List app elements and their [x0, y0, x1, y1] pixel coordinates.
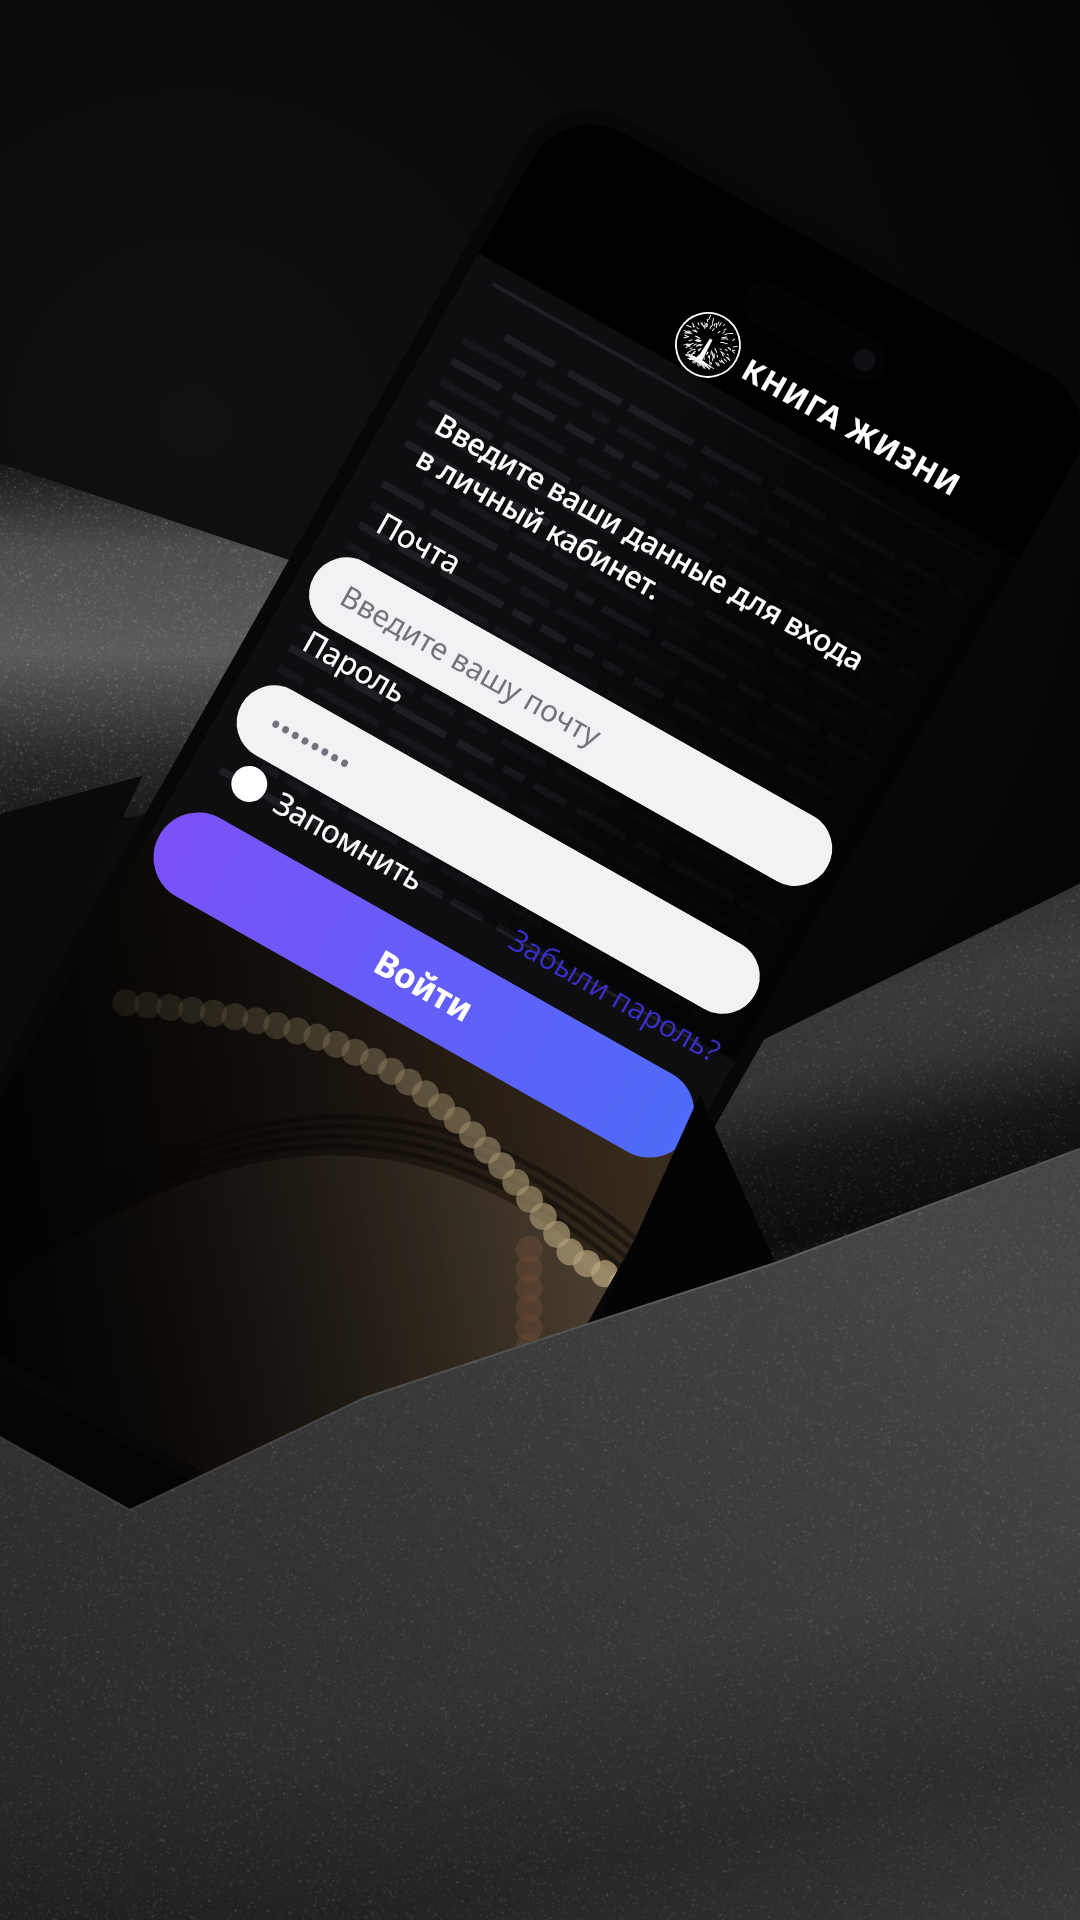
button[interactable]: Запомнить меня: [215, 749, 440, 908]
staticText: Введите вашу почту: [333, 575, 609, 756]
staticText: Почта: [370, 502, 470, 583]
button[interactable]: Забыли пароль?: [491, 908, 739, 1082]
staticText: Пароль: [296, 620, 415, 712]
other: Запомнить меня: [225, 759, 274, 808]
staticText: Введите ваши данные для входа в личный к…: [409, 404, 873, 713]
staticText: Войти: [366, 939, 482, 1032]
staticText: КНИГА ЖИЗНИ: [735, 349, 969, 505]
staticText: Забыли пароль?: [502, 919, 728, 1071]
staticText: Запомнить: [267, 781, 432, 900]
button[interactable]: ••••••••: [223, 672, 773, 1027]
button[interactable]: Введите вашу почту: [295, 544, 846, 899]
staticText: ••••••••: [261, 703, 360, 784]
button[interactable]: Войти: [137, 796, 711, 1174]
button[interactable]: Книга жизни: [663, 300, 976, 516]
